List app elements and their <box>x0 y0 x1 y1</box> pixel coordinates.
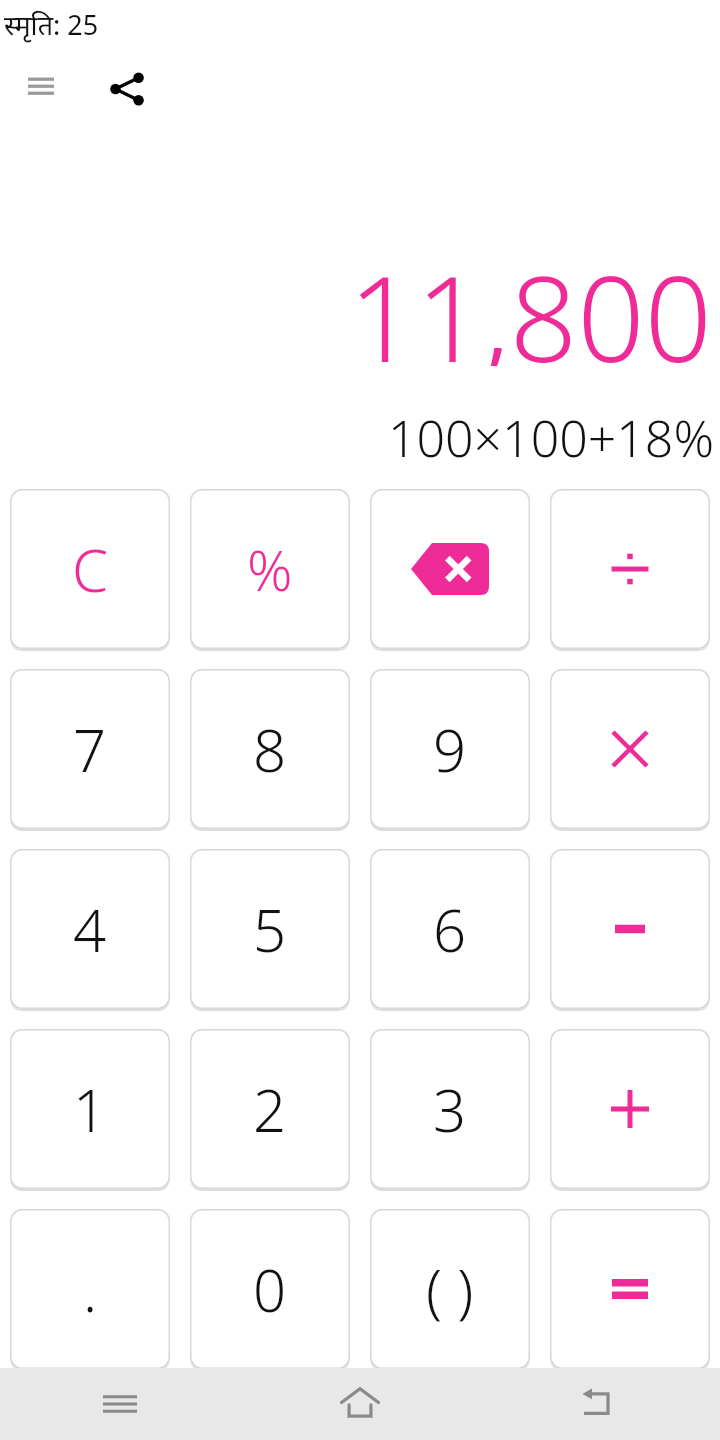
button[interactable]: Clear <box>10 489 170 649</box>
staticText: % <box>247 531 293 607</box>
button[interactable]: 1 <box>10 1029 170 1189</box>
staticText: 4 <box>73 890 107 969</box>
staticText: 100×100+18% <box>387 404 714 466</box>
button[interactable]: Back <box>480 1368 720 1440</box>
button[interactable]: Minus <box>550 849 710 1009</box>
button[interactable]: Plus <box>550 1029 710 1189</box>
staticText: C <box>72 530 109 609</box>
button[interactable]: Recents <box>0 1368 240 1440</box>
button[interactable]: 2 <box>190 1029 350 1189</box>
button[interactable]: 3 <box>370 1029 530 1189</box>
staticText: 0 <box>253 1250 287 1329</box>
staticText: ( ) <box>426 1250 474 1329</box>
button[interactable]: Percent <box>190 489 350 649</box>
button[interactable]: 5 <box>190 849 350 1009</box>
staticText: 6 <box>433 890 467 969</box>
staticText: 5 <box>253 890 287 969</box>
button[interactable]: 7 <box>10 669 170 829</box>
staticText: 7 <box>73 710 107 789</box>
staticText: 8 <box>253 710 287 789</box>
button[interactable]: . <box>10 1209 170 1369</box>
button[interactable]: 0 <box>190 1209 350 1369</box>
button[interactable]: Divide <box>550 489 710 649</box>
button[interactable]: 8 <box>190 669 350 829</box>
staticText: . <box>83 1250 98 1329</box>
button[interactable]: स्मृति: 25 <box>2 6 101 43</box>
button[interactable]: Multiply <box>550 669 710 829</box>
staticText: स्मृति: 25 <box>4 6 99 43</box>
staticText: 9 <box>433 710 467 789</box>
button[interactable]: Parentheses <box>370 1209 530 1369</box>
button[interactable]: Share <box>96 58 158 120</box>
button[interactable]: 6 <box>370 849 530 1009</box>
button[interactable]: 9 <box>370 669 530 829</box>
staticText: 11,800 <box>348 236 712 366</box>
staticText: 2 <box>253 1070 287 1149</box>
button[interactable]: Backspace <box>370 489 530 649</box>
staticText: 3 <box>433 1070 467 1149</box>
button[interactable]: Menu <box>12 58 70 116</box>
button[interactable]: Equals <box>550 1209 710 1369</box>
button[interactable]: Home <box>240 1368 480 1440</box>
staticText: 1 <box>73 1070 107 1149</box>
button[interactable]: 4 <box>10 849 170 1009</box>
